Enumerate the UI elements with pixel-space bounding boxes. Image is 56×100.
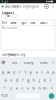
staticText: v xyxy=(52,60,53,64)
button[interactable]: z xyxy=(8,84,14,92)
staticText: testing xyxy=(23,61,33,64)
button[interactable]: Shift xyxy=(0,84,8,92)
staticText: r xyxy=(19,69,21,75)
button[interactable]: Google search xyxy=(1,60,5,64)
staticText: c xyxy=(21,85,23,91)
button[interactable]: More options xyxy=(50,3,56,9)
staticText: m xyxy=(43,85,47,91)
staticText: Name xyxy=(10,21,17,25)
staticText: w xyxy=(7,69,10,75)
button[interactable]: o xyxy=(45,68,50,76)
button[interactable]: v xyxy=(25,84,31,92)
button[interactable]: g xyxy=(25,76,31,84)
button[interactable]: m xyxy=(42,84,48,92)
button[interactable]: e xyxy=(11,68,17,76)
staticText: v xyxy=(27,85,29,91)
button[interactable]: r xyxy=(17,68,22,76)
button[interactable]: Space xyxy=(15,92,41,100)
button[interactable]: d xyxy=(14,76,20,84)
button[interactable]: b xyxy=(31,84,36,92)
staticText: k xyxy=(44,77,46,83)
staticText: ^ xyxy=(3,85,5,91)
button[interactable]: Tabs xyxy=(43,3,49,9)
button[interactable]: p xyxy=(50,68,56,76)
button[interactable]: Search xyxy=(47,92,56,100)
staticText: No records xyxy=(2,26,17,30)
staticText: tester xyxy=(40,61,48,64)
button[interactable]: a xyxy=(3,76,8,84)
staticText: s xyxy=(10,77,12,83)
staticText: g xyxy=(27,77,29,83)
staticText: j xyxy=(39,77,40,83)
button[interactable]: tester xyxy=(38,60,50,66)
button[interactable]: Delete xyxy=(48,84,56,92)
staticText: n xyxy=(38,85,40,91)
button[interactable]: test xyxy=(9,60,20,66)
staticText: u xyxy=(35,69,37,75)
button[interactable]: n xyxy=(36,84,42,92)
staticText: Status xyxy=(40,21,47,25)
button[interactable]: More suggestions xyxy=(51,61,54,64)
button[interactable]: y xyxy=(28,68,34,76)
button[interactable]: s xyxy=(8,76,14,84)
button[interactable]: , xyxy=(9,92,15,100)
staticText: b xyxy=(33,85,35,91)
button[interactable]: x xyxy=(14,84,20,92)
button[interactable]: c xyxy=(20,84,25,92)
button[interactable]: testing xyxy=(22,60,35,66)
button[interactable]: h xyxy=(31,76,36,84)
button[interactable]: l xyxy=(48,76,53,84)
staticText: Type xyxy=(21,21,27,25)
staticText: d xyxy=(16,77,18,83)
staticText: q xyxy=(2,69,4,75)
button[interactable]: ?123 xyxy=(0,92,9,100)
staticText: h xyxy=(33,77,35,83)
staticText: apps.example.org/logout xyxy=(5,5,39,8)
button[interactable]: Address bar xyxy=(0,3,43,9)
button[interactable]: f xyxy=(20,76,25,84)
staticText: y xyxy=(30,69,32,75)
staticText: o xyxy=(47,69,49,75)
button[interactable]: k xyxy=(42,76,48,84)
button[interactable]: t xyxy=(22,68,28,76)
staticText: l xyxy=(50,77,51,83)
button[interactable]: q xyxy=(0,68,6,76)
staticText: x xyxy=(16,85,18,91)
staticText: Date xyxy=(30,21,36,25)
staticText: z xyxy=(10,85,12,91)
staticText: t xyxy=(25,69,26,75)
staticText: test xyxy=(12,61,17,64)
staticText: e xyxy=(13,69,15,75)
staticText: ab xyxy=(7,14,10,18)
staticText: 9:41 xyxy=(1,1,8,4)
staticText: user@example.org xyxy=(1,53,25,56)
button[interactable]: u xyxy=(34,68,39,76)
staticText: Ref xyxy=(2,21,7,25)
staticText: Logout xyxy=(1,10,14,15)
staticText: x xyxy=(51,86,52,90)
staticText: ?123 xyxy=(1,94,8,98)
staticText: p xyxy=(52,69,54,75)
button[interactable]: . xyxy=(41,92,47,100)
button[interactable]: j xyxy=(36,76,42,84)
button[interactable]: w xyxy=(6,68,11,76)
staticText: f xyxy=(22,77,23,83)
staticText: a xyxy=(5,77,7,83)
button[interactable]: i xyxy=(39,68,45,76)
